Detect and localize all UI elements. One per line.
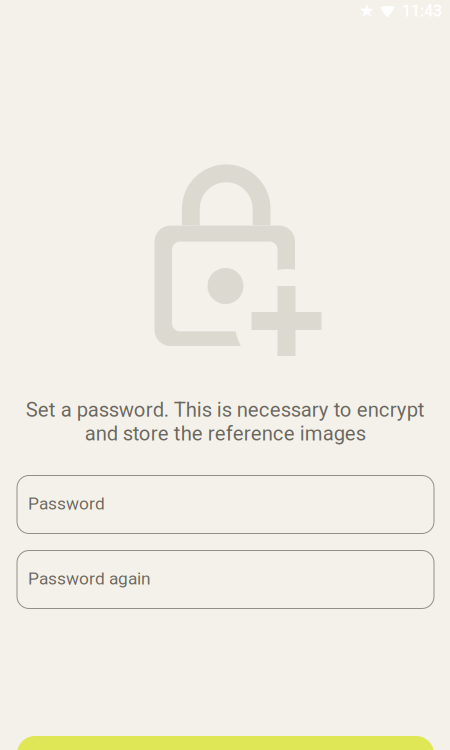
- button[interactable]: [17, 736, 434, 750]
- button[interactable]: Password: [17, 475, 434, 533]
- button[interactable]: Password again: [17, 550, 434, 608]
- staticText: Password: [28, 493, 105, 514]
- staticText: Password again: [28, 568, 151, 589]
- staticText: Set a password. This is necessary to enc…: [25, 398, 424, 445]
- staticText: 11:43: [402, 2, 442, 20]
